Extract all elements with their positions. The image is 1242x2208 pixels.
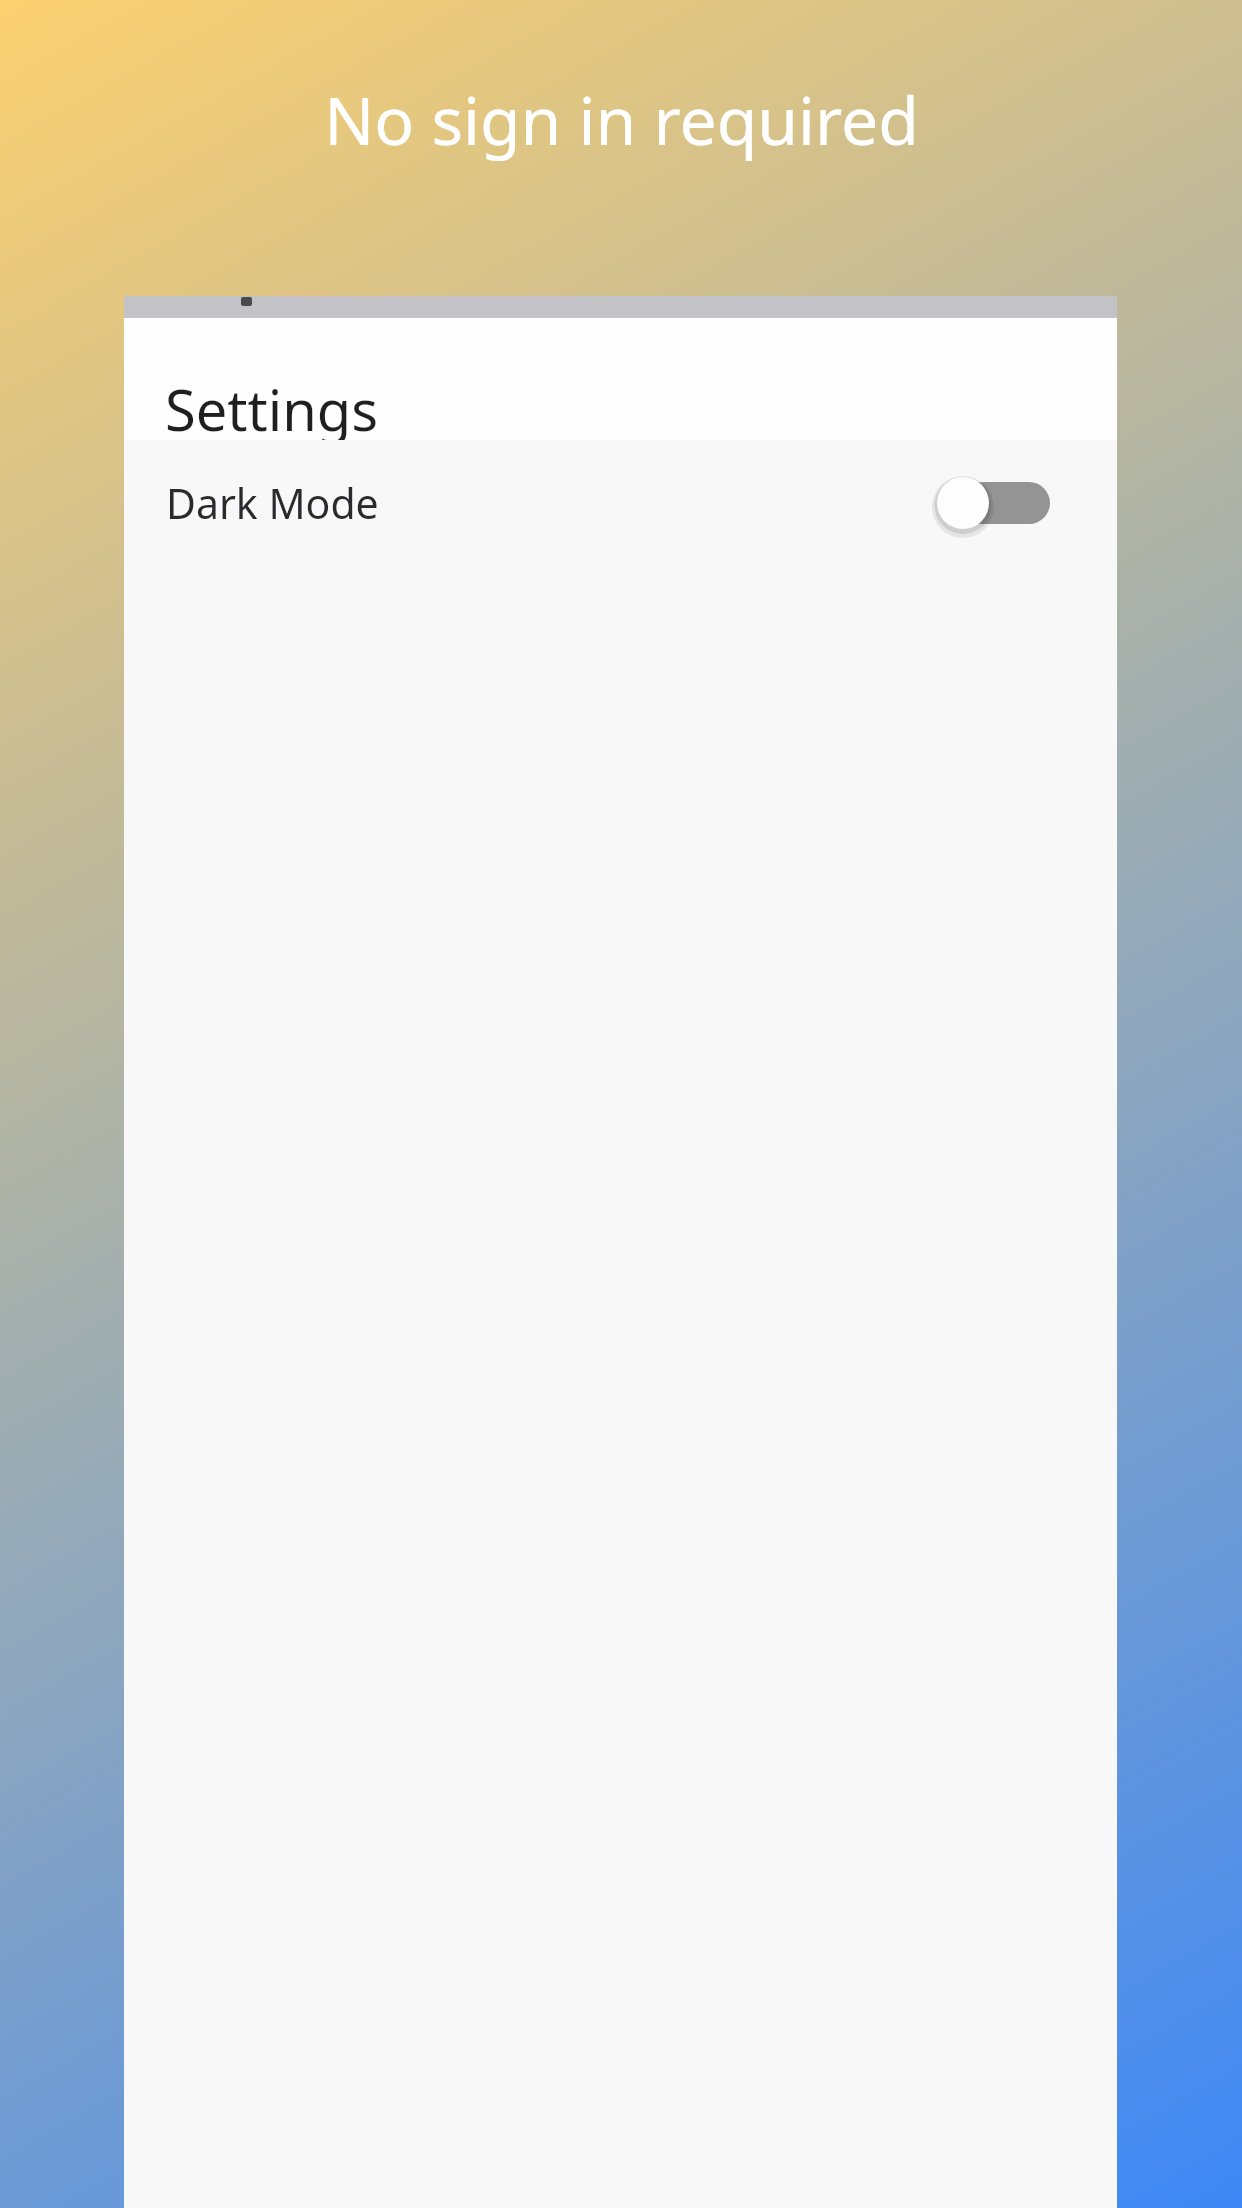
staticText: Dark Mode <box>166 475 379 531</box>
staticText: No sign in required <box>324 74 919 164</box>
button[interactable]: Dark Mode toggle, off <box>938 465 1050 541</box>
button[interactable]: Dark Mode <box>124 440 1117 566</box>
staticText: Settings <box>165 371 379 447</box>
